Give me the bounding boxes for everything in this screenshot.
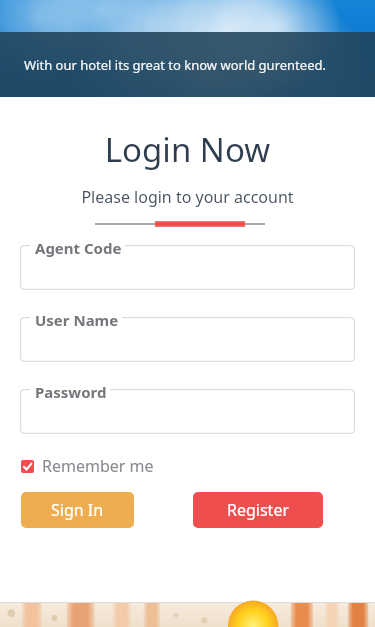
staticText: Login Now: [0, 127, 375, 172]
staticText: Please login to your account: [0, 186, 375, 208]
button[interactable]: [20, 389, 355, 434]
staticText: Sign In: [51, 499, 104, 521]
button[interactable]: Register: [193, 492, 323, 528]
staticText: Register: [227, 499, 290, 521]
staticText: Password: [35, 382, 107, 402]
button[interactable]: [20, 245, 355, 290]
staticText: With our hotel its great to know world g…: [24, 56, 326, 74]
staticText: User Name: [35, 310, 119, 330]
staticText: Remember me: [42, 455, 154, 477]
button[interactable]: Sign In: [21, 492, 134, 528]
button[interactable]: [20, 317, 355, 362]
staticText: Agent Code: [35, 238, 122, 258]
button[interactable]: Remember me: [21, 453, 162, 479]
